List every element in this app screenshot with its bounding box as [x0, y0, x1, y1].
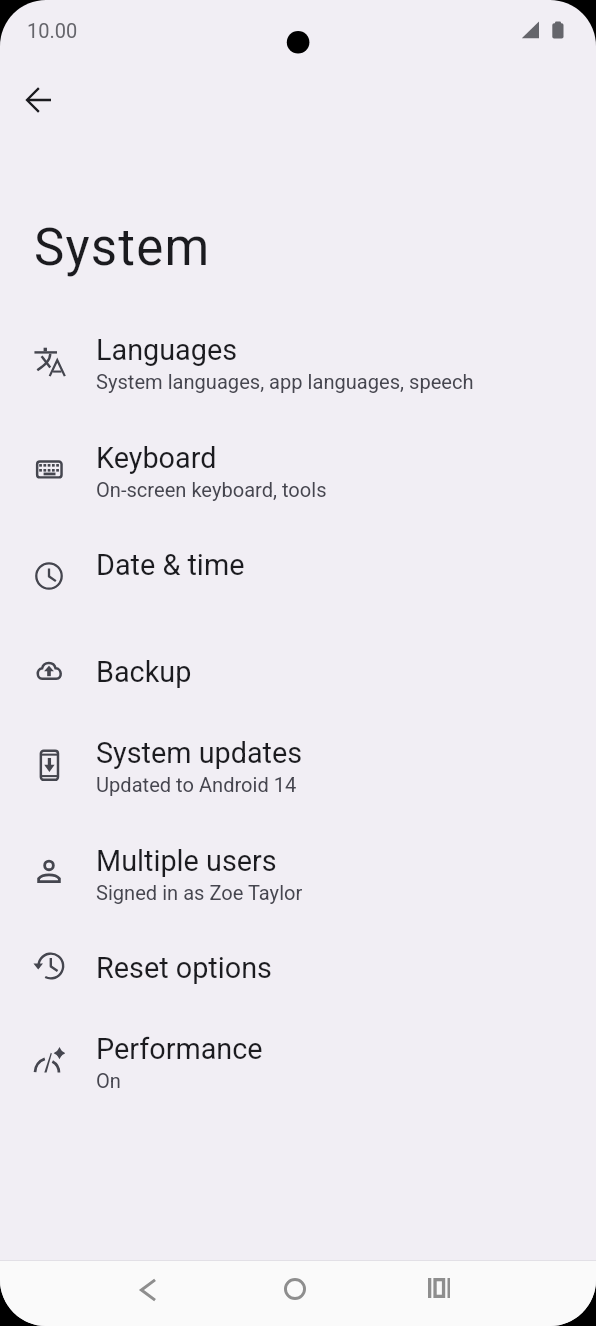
staticText: Performance	[96, 1032, 263, 1066]
button[interactable]: Languages	[0, 312, 98, 412]
button[interactable]: Backup	[0, 620, 98, 720]
staticText: Updated to Android 14	[96, 773, 297, 797]
button[interactable]: Back	[115, 1257, 181, 1323]
staticText: On-screen keyboard, tools	[96, 478, 327, 502]
staticText: On	[96, 1069, 121, 1093]
staticText: Keyboard	[96, 441, 217, 475]
staticText: Backup	[96, 655, 192, 689]
button[interactable]: Multiple users	[0, 822, 98, 922]
button[interactable]: Reset options	[0, 916, 98, 1016]
staticText: 10.00	[27, 19, 78, 42]
button[interactable]: Recent apps	[406, 1255, 472, 1321]
staticText: Date & time	[96, 548, 245, 582]
staticText: Reset options	[96, 951, 272, 985]
button[interactable]: System updates	[0, 714, 98, 814]
staticText: System	[34, 218, 211, 278]
staticText: System languages, app languages, speech	[96, 370, 474, 394]
staticText: System updates	[96, 736, 303, 770]
button[interactable]: Back	[12, 73, 66, 127]
button[interactable]: Home	[262, 1256, 328, 1322]
button[interactable]: Keyboard	[0, 419, 98, 519]
staticText: Signed in as Zoe Taylor	[96, 881, 303, 905]
staticText: Multiple users	[96, 844, 277, 878]
button[interactable]: Date & time	[0, 526, 98, 626]
button[interactable]: Performance	[0, 1010, 98, 1110]
staticText: Languages	[96, 333, 238, 367]
